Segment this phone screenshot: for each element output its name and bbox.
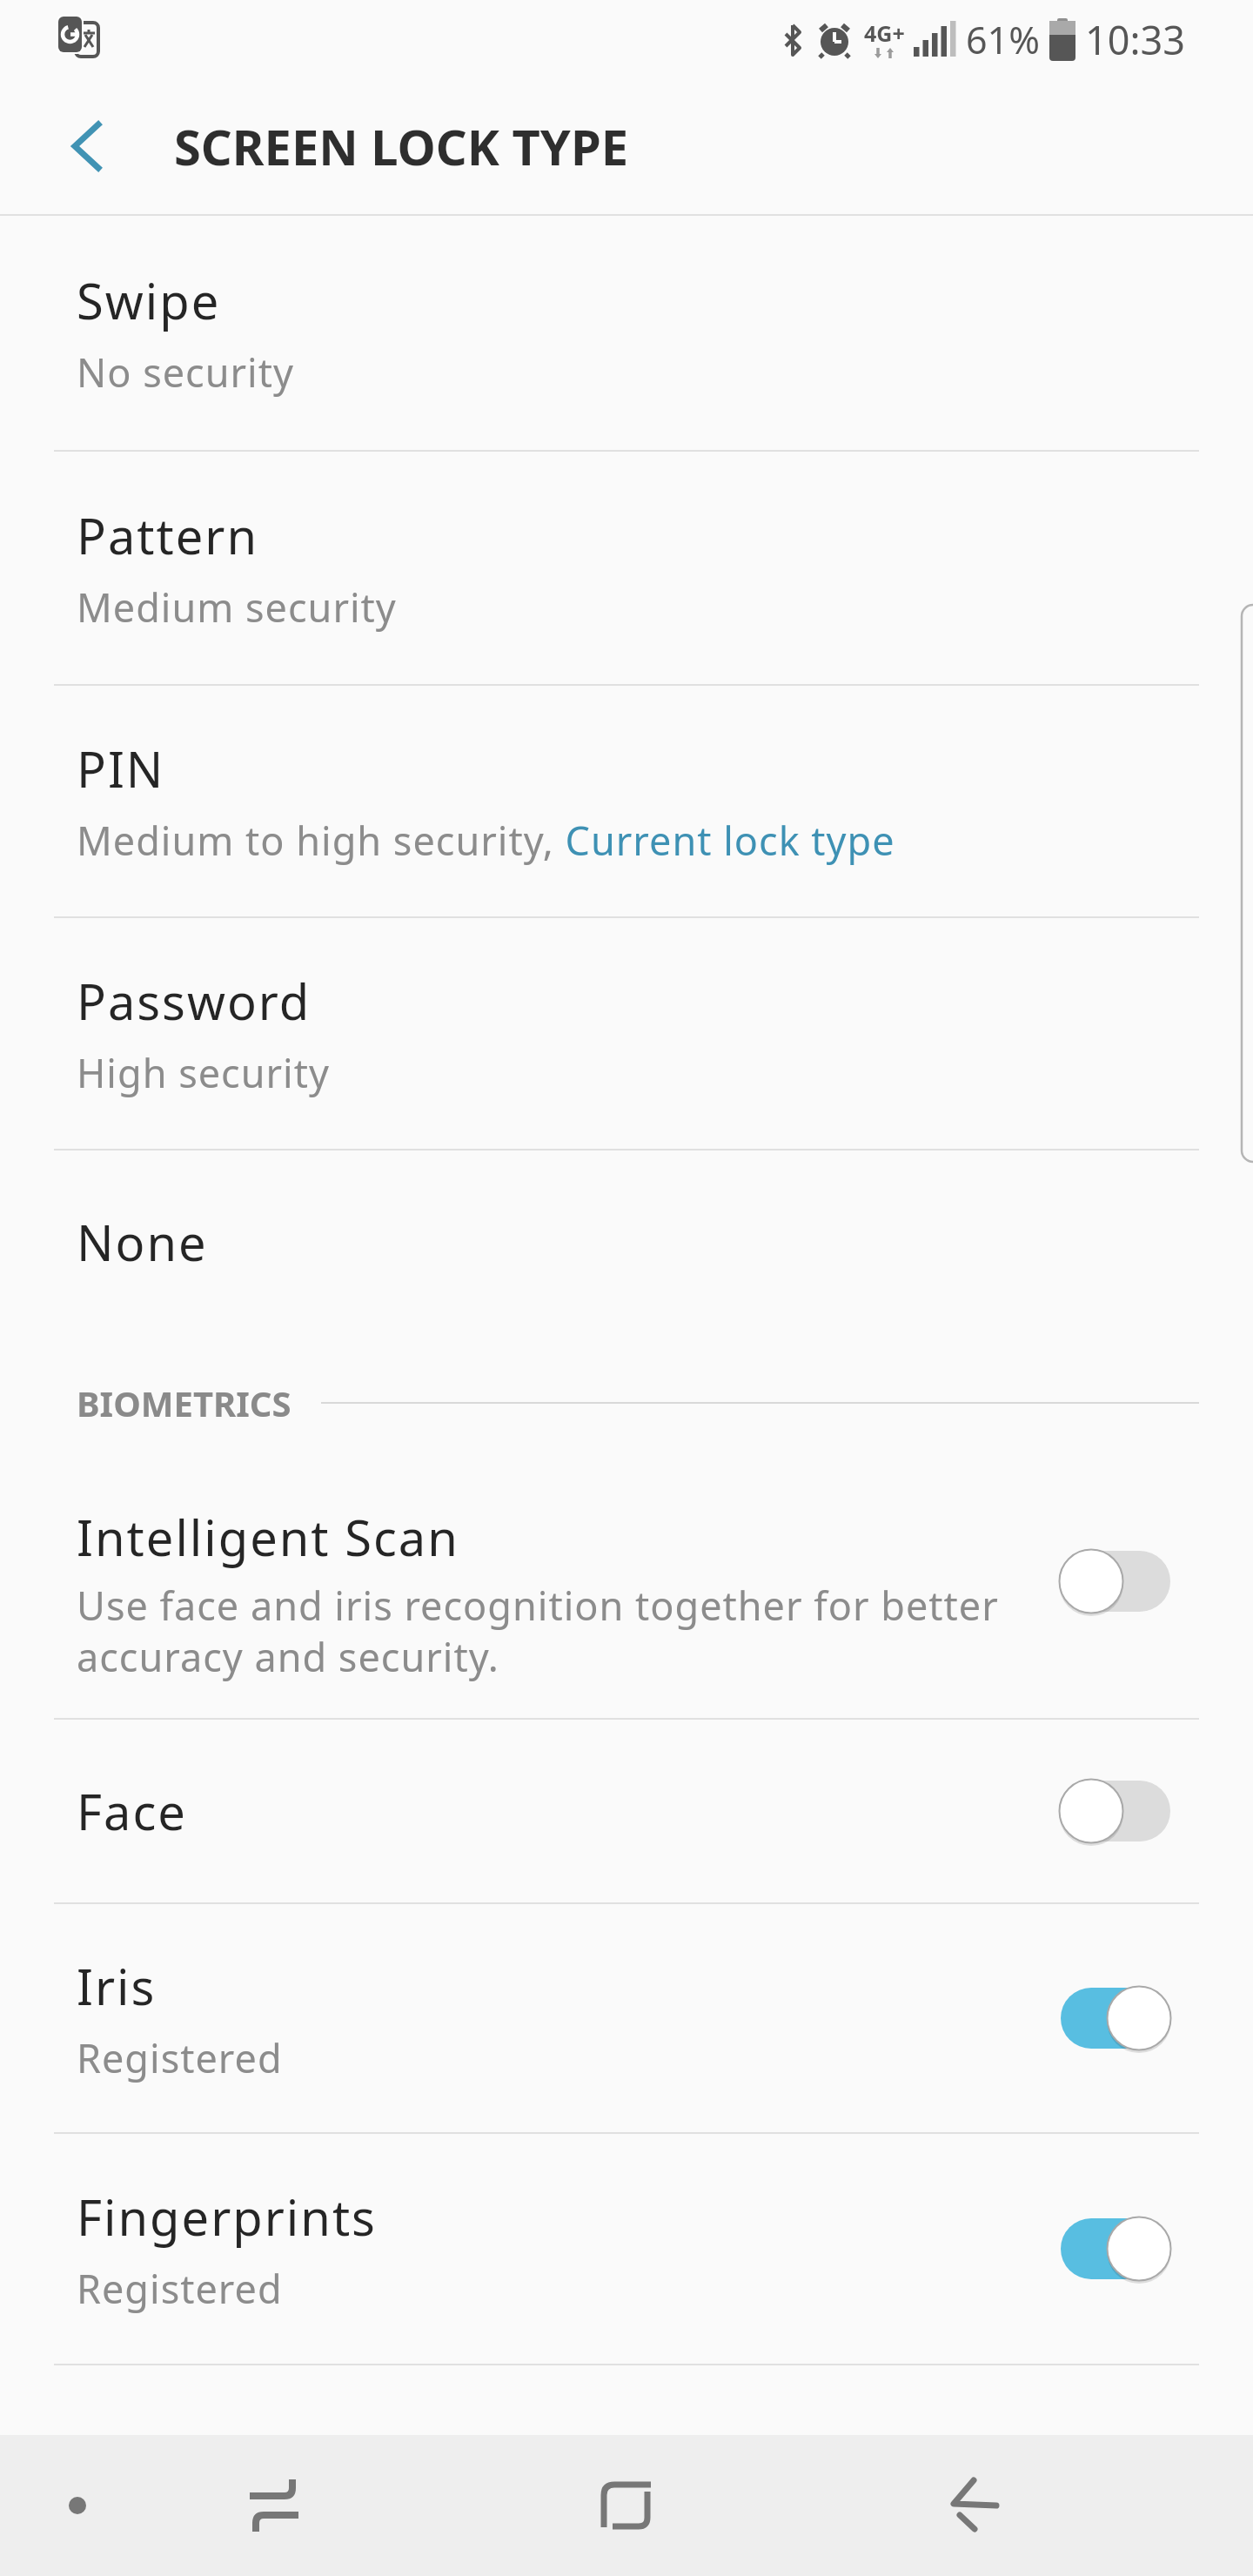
- button[interactable]: [1058, 1548, 1172, 1614]
- staticText: None: [77, 1209, 208, 1275]
- staticText: 10:33: [1085, 13, 1186, 66]
- staticText: Medium to high security, Current lock ty…: [77, 814, 895, 867]
- staticText: Registered: [77, 2262, 283, 2315]
- button[interactable]: [909, 2440, 1040, 2571]
- staticText: Iris: [77, 1953, 157, 2019]
- staticText: Registered: [77, 2031, 283, 2084]
- staticText: PIN: [77, 735, 165, 802]
- button[interactable]: Password: [0, 918, 1253, 1149]
- button[interactable]: [209, 2440, 339, 2571]
- staticText: Password: [77, 968, 312, 1034]
- staticText: 61%: [966, 14, 1040, 65]
- button[interactable]: [1058, 2216, 1172, 2282]
- button[interactable]: [49, 108, 125, 184]
- button[interactable]: None: [0, 1150, 1253, 1333]
- button[interactable]: Fingerprints: [0, 2134, 1253, 2364]
- button[interactable]: Face: [0, 1720, 1253, 1902]
- staticText: BIOMETRICS: [77, 1379, 291, 1426]
- staticText: Swipe: [77, 267, 221, 333]
- staticText: Medium security: [77, 580, 397, 634]
- button[interactable]: Intelligent Scan: [0, 1472, 1253, 1718]
- button[interactable]: Swipe: [0, 216, 1253, 450]
- button[interactable]: [1058, 1985, 1172, 2051]
- staticText: Use face and iris recognition together f…: [77, 1579, 1051, 1683]
- staticText: Intelligent Scan: [77, 1504, 459, 1570]
- button[interactable]: [561, 2440, 692, 2571]
- staticText: Pattern: [77, 502, 259, 568]
- button[interactable]: PIN: [0, 686, 1253, 916]
- staticText: Face: [77, 1778, 187, 1844]
- staticText: Fingerprints: [77, 2184, 377, 2250]
- staticText: High security: [77, 1046, 330, 1099]
- button[interactable]: Pattern: [0, 452, 1253, 684]
- staticText: No security: [77, 345, 294, 399]
- staticText: 4G+: [864, 18, 905, 48]
- button[interactable]: [1058, 1778, 1172, 1844]
- staticText: SCREEN LOCK TYPE: [174, 113, 629, 179]
- button[interactable]: Iris: [0, 1904, 1253, 2132]
